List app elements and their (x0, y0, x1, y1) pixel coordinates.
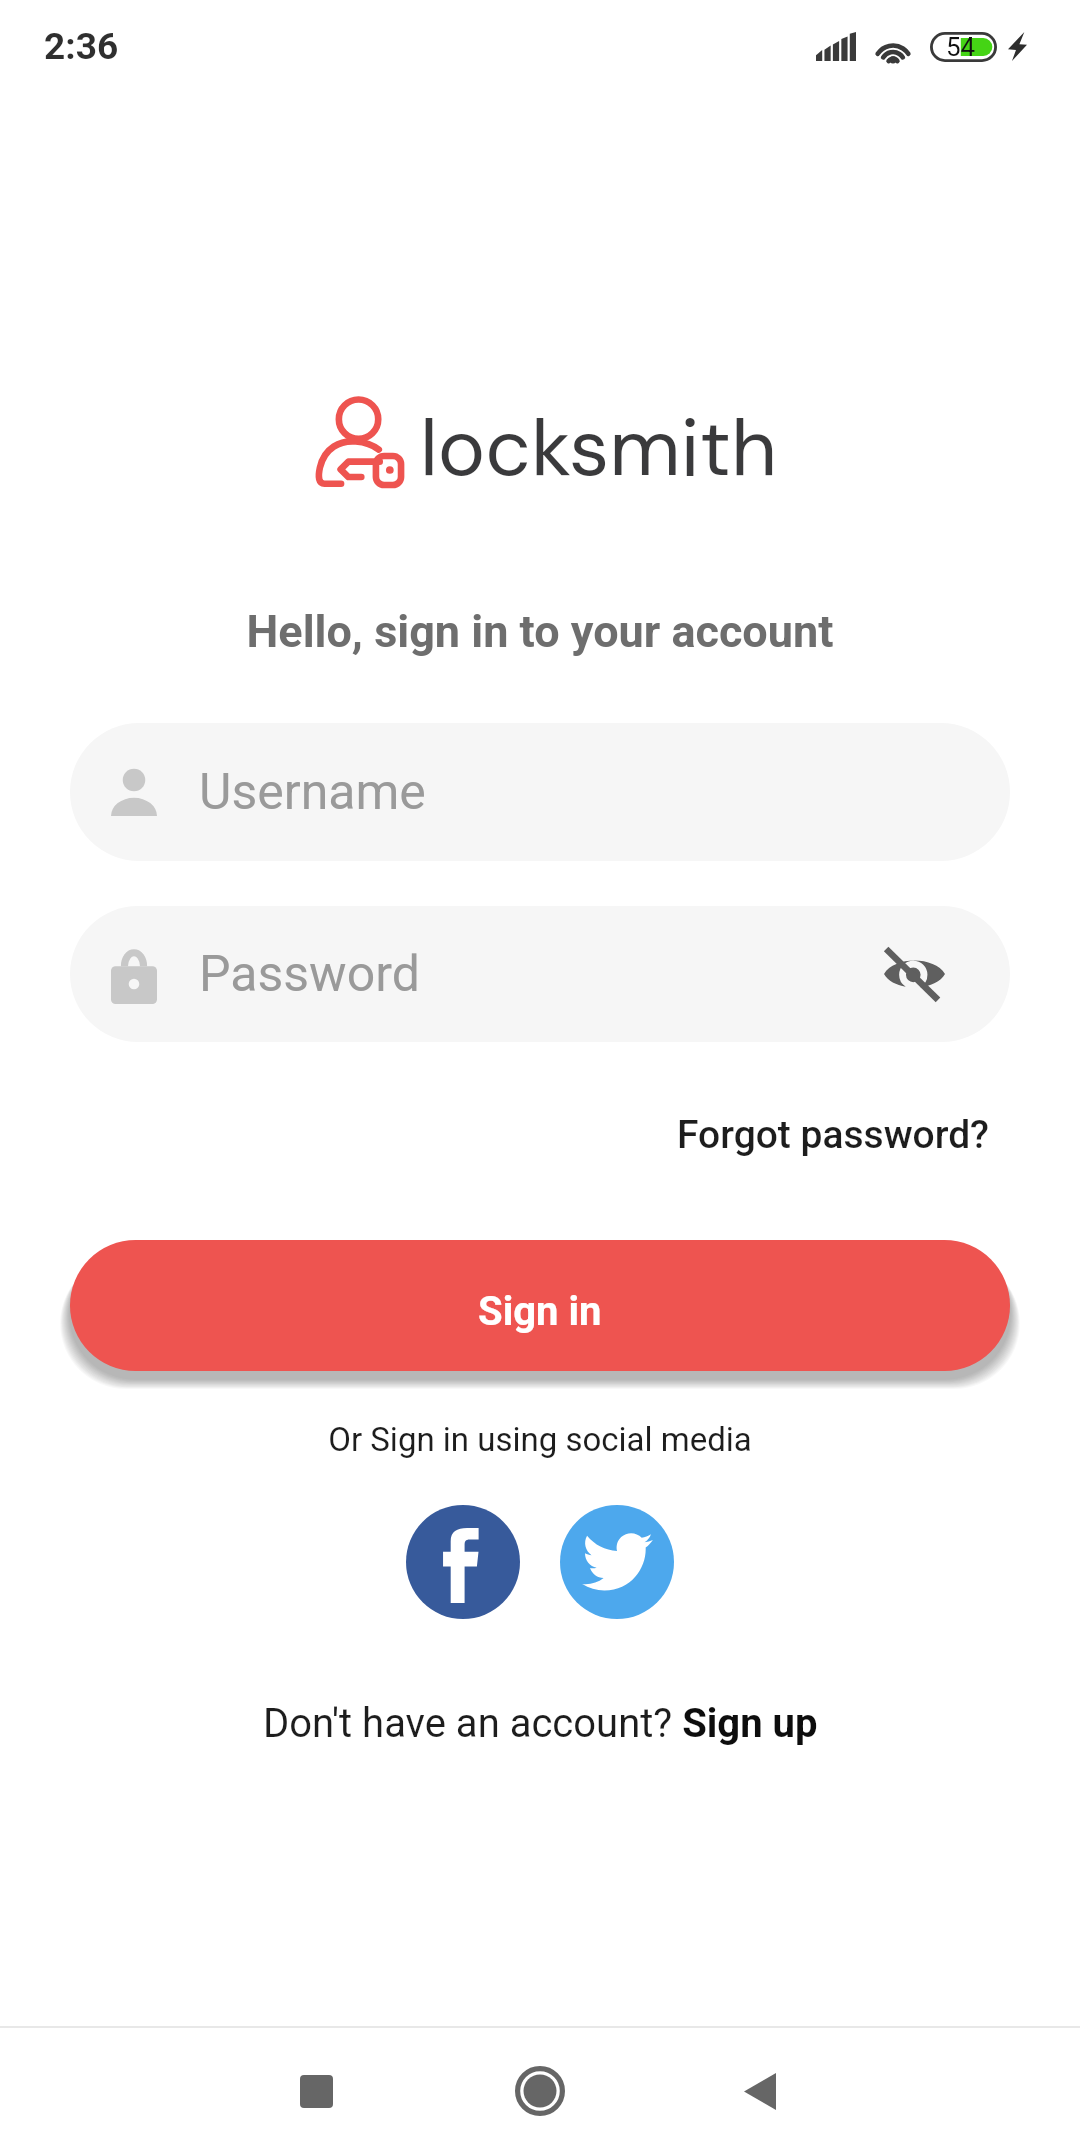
button[interactable]: Username (70, 723, 1010, 861)
staticText: 2:36 (44, 25, 119, 68)
staticText: Don't have an account? Sign up (263, 1700, 818, 1747)
button[interactable]: Home (480, 2031, 600, 2151)
staticText: Sign in (478, 1288, 602, 1335)
button[interactable]: Sign in with Twitter (560, 1505, 674, 1619)
staticText: locksmith (420, 396, 778, 500)
button[interactable]: Password (70, 906, 1010, 1042)
button[interactable]: Recent apps (256, 2031, 376, 2151)
button[interactable]: Show password (876, 936, 952, 1012)
staticText: Forgot password? (677, 1112, 990, 1158)
button[interactable]: Sign in (70, 1240, 1010, 1371)
button[interactable]: Sign in with Facebook (406, 1505, 520, 1619)
button[interactable]: Don't have an account? Sign up (263, 1700, 818, 1747)
staticText: Or Sign in using social media (0, 1420, 1080, 1459)
button[interactable]: Forgot password? (677, 1112, 990, 1158)
staticText: Password (199, 945, 420, 1004)
staticText: Hello, sign in to your account (0, 605, 1080, 658)
staticText: Username (199, 763, 426, 822)
staticText: 54 (946, 32, 976, 62)
button[interactable]: Back (700, 2031, 820, 2151)
